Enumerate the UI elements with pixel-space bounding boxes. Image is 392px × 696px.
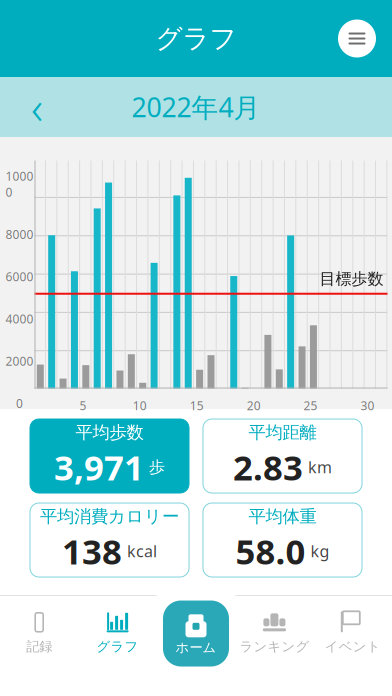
button[interactable]: 記録 xyxy=(0,604,78,660)
staticText: 10000 xyxy=(5,168,33,200)
staticText: 目標歩数 xyxy=(319,269,383,289)
staticText: kg xyxy=(310,540,329,562)
staticText: 8000 xyxy=(5,226,33,242)
staticText: 2.83 xyxy=(233,444,303,490)
staticText: 5 xyxy=(79,397,86,413)
button[interactable]: イベント xyxy=(314,604,392,660)
staticText: 平均体重 xyxy=(248,506,316,527)
staticText: ‹ xyxy=(31,77,43,137)
staticText: 58.0 xyxy=(235,528,305,574)
staticText: kcal xyxy=(127,540,157,562)
staticText: 3,971 xyxy=(54,444,144,490)
button[interactable]: グラフ xyxy=(78,604,157,660)
staticText: 20 xyxy=(247,397,261,413)
button[interactable]: 平均歩数 xyxy=(30,419,189,493)
staticText: 25 xyxy=(304,397,318,413)
staticText: イベント xyxy=(325,638,381,655)
button[interactable]: ホーム xyxy=(163,600,229,666)
button[interactable]: メニュー xyxy=(338,19,376,57)
staticText: 0 xyxy=(16,395,23,411)
staticText: 平均距離 xyxy=(248,422,316,443)
staticText: ランキング xyxy=(239,638,309,655)
staticText: 記録 xyxy=(26,638,52,655)
staticText: km xyxy=(308,456,332,478)
staticText: 15 xyxy=(190,397,204,413)
button[interactable]: 平均距離 xyxy=(203,419,362,493)
staticText: 2022年4月 xyxy=(131,89,260,125)
staticText: 10 xyxy=(133,397,147,413)
staticText: 138 xyxy=(62,528,122,574)
staticText: グラフ xyxy=(97,638,139,655)
button[interactable]: ランキング xyxy=(235,604,314,660)
staticText: グラフ xyxy=(155,22,236,55)
staticText: 平均消費カロリー xyxy=(40,506,179,527)
button[interactable]: 平均消費カロリー xyxy=(30,503,189,577)
staticText: 30 xyxy=(360,397,374,413)
button[interactable]: 平均体重 xyxy=(203,503,362,577)
staticText: 6000 xyxy=(5,269,33,284)
staticText: 平均歩数 xyxy=(75,422,143,443)
staticText: 歩 xyxy=(149,457,165,477)
staticText: ホーム xyxy=(175,639,216,656)
button[interactable]: 前の月 xyxy=(22,85,52,129)
staticText: 4000 xyxy=(5,311,33,327)
staticText: 2000 xyxy=(5,353,33,369)
